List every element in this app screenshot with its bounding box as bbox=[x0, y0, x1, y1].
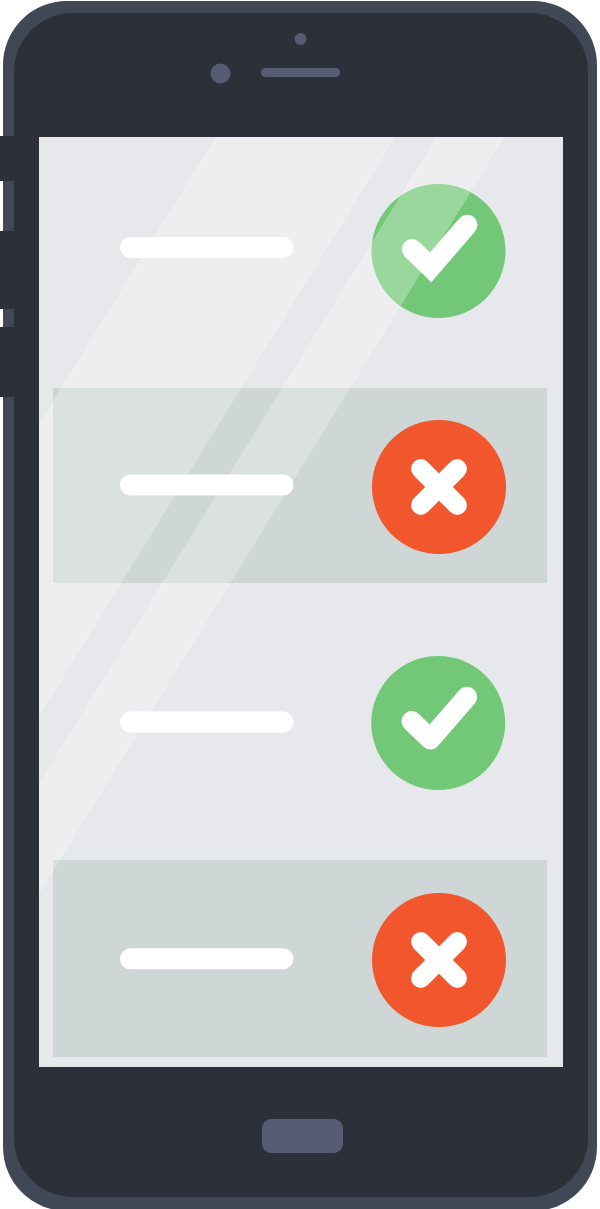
button[interactable]: Checklist on phone bbox=[0, 0, 600, 1209]
